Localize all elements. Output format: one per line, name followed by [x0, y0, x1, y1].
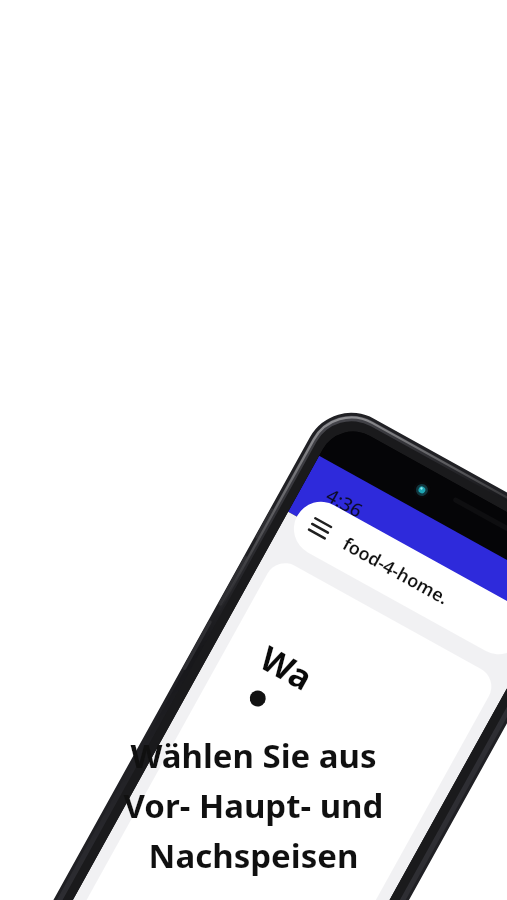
- button[interactable]: Smartphone showing the food-4-home app: [0, 0, 507, 900]
- staticText: Wählen Sie aus Vor- Haupt- und Nachspeis…: [0, 733, 507, 878]
